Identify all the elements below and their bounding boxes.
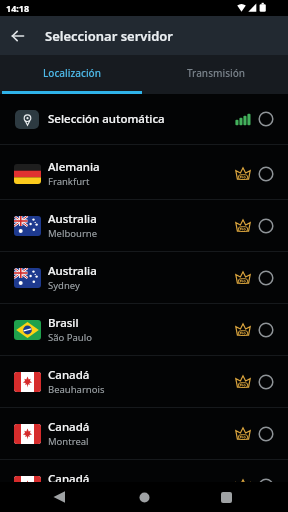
staticText: Canadá xyxy=(48,471,90,482)
button[interactable]: Australia xyxy=(0,200,288,251)
button[interactable]: Canadá xyxy=(0,356,288,407)
button[interactable]: Australia xyxy=(0,252,288,303)
staticText: Beauharnois xyxy=(48,383,105,396)
staticText: Montreal xyxy=(48,435,89,448)
button[interactable]: Canadá xyxy=(0,408,288,459)
button[interactable]: Transmisión xyxy=(144,55,288,91)
button[interactable] xyxy=(139,492,150,503)
staticText: 14:18 xyxy=(6,2,30,14)
staticText: Sydney xyxy=(48,279,80,292)
staticText: Brasil xyxy=(48,315,79,331)
staticText: Transmisión xyxy=(187,66,246,80)
staticText: Localización xyxy=(43,66,101,80)
staticText: Frankfurt xyxy=(48,175,90,188)
staticText: Australia xyxy=(48,263,97,279)
button[interactable] xyxy=(221,492,232,503)
staticText: Selección automática xyxy=(48,111,235,127)
button[interactable]: Canadá xyxy=(0,460,288,482)
button[interactable] xyxy=(53,491,66,503)
staticText: Canadá xyxy=(48,419,90,435)
staticText: Australia xyxy=(48,211,97,227)
button[interactable]: Selección automática xyxy=(0,94,288,144)
button[interactable]: Brasil xyxy=(0,304,288,355)
button[interactable]: Localización xyxy=(0,55,144,91)
staticText: Melbourne xyxy=(48,227,98,240)
staticText: São Paulo xyxy=(48,331,92,344)
button[interactable] xyxy=(0,16,36,55)
staticText: Alemania xyxy=(48,159,100,175)
button[interactable]: Alemania xyxy=(0,148,288,199)
staticText: Seleccionar servidor xyxy=(45,27,173,45)
staticText: Canadá xyxy=(48,367,90,383)
